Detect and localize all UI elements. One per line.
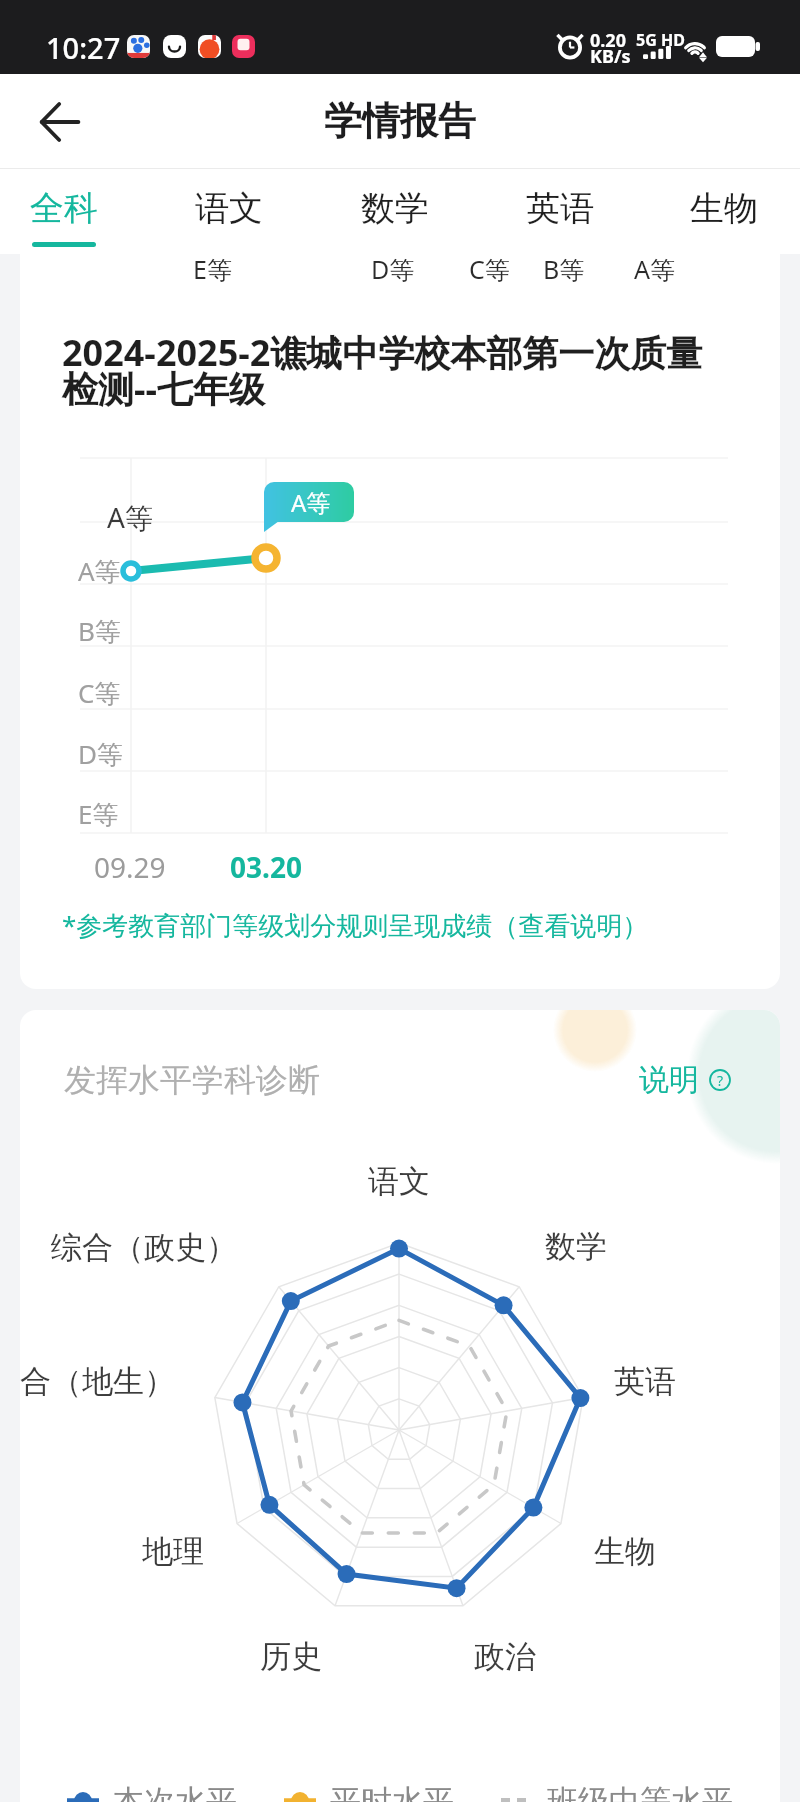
staticText: 09.29	[94, 848, 166, 886]
button[interactable]: *参考教育部门等级划分规则呈现成绩（查看说明）	[62, 902, 649, 948]
staticText: ?	[717, 1071, 724, 1090]
staticText: 英语	[526, 187, 594, 230]
staticText: C等	[78, 675, 121, 711]
staticText: 0.20	[590, 28, 626, 48]
staticText: 03.20	[230, 848, 302, 886]
staticText: B等	[78, 613, 121, 649]
staticText: A等	[78, 553, 121, 589]
staticText: D等	[371, 254, 415, 286]
staticText: 全科	[30, 187, 98, 230]
staticText: A等	[634, 254, 675, 286]
staticText: 学情报告	[324, 97, 476, 145]
staticText: 英语	[614, 1362, 676, 1401]
staticText: 生物	[690, 187, 758, 230]
button[interactable]: 生物	[674, 169, 774, 254]
staticText: 说明	[639, 1061, 699, 1099]
staticText: 语文	[368, 1162, 430, 1201]
staticText: 10:27	[46, 28, 121, 64]
staticText: A等	[291, 486, 331, 519]
button[interactable]: 英语	[510, 169, 610, 254]
staticText: 综合（地生）	[20, 1362, 175, 1401]
staticText: A等	[107, 498, 153, 536]
staticText: 2024-2025-2谯城中学校本部第一次质量检测--七年级	[62, 328, 726, 413]
staticText: 平时水平	[330, 1782, 454, 1802]
button[interactable]: 说明	[639, 1058, 731, 1102]
staticText: E等	[78, 796, 119, 832]
staticText: KB/s	[590, 44, 631, 64]
staticText: D等	[78, 736, 123, 772]
staticText: 综合（政史）	[51, 1228, 237, 1267]
staticText: 5G HD	[636, 29, 685, 49]
button[interactable]: 语文	[179, 169, 279, 254]
staticText: B等	[543, 254, 585, 286]
button[interactable]: 全科	[14, 169, 114, 254]
staticText: 本次水平	[113, 1782, 237, 1802]
staticText: 历史	[260, 1637, 322, 1676]
staticText: 生物	[594, 1532, 656, 1571]
button[interactable]: Back	[32, 94, 88, 150]
staticText: E等	[193, 254, 232, 286]
staticText: 班级中等水平	[547, 1782, 733, 1802]
staticText: *参考教育部门等级划分规则呈现成绩（查看说明）	[62, 907, 649, 943]
staticText: 语文	[195, 187, 263, 230]
staticText: 政治	[474, 1637, 536, 1676]
staticText: 数学	[361, 187, 429, 230]
button[interactable]: 数学	[345, 169, 445, 254]
staticText: 数学	[545, 1227, 607, 1266]
staticText: 地理	[142, 1532, 204, 1571]
staticText: 发挥水平学科诊断	[64, 1060, 320, 1100]
staticText: C等	[469, 254, 510, 286]
